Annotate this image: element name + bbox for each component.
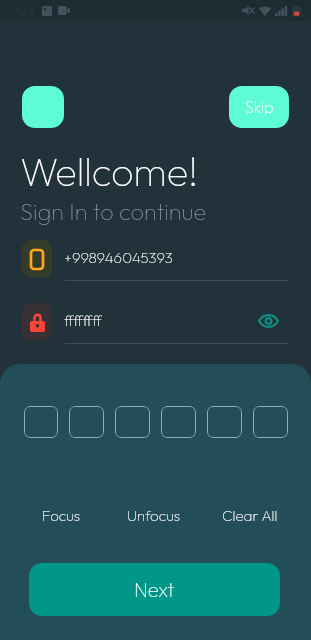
staticText: +998946045393 <box>64 248 173 267</box>
button[interactable]: Focus <box>11 499 111 531</box>
staticText: 7:23 <box>14 4 35 18</box>
button[interactable]: OTP digit <box>253 406 288 438</box>
staticText: Focus <box>42 506 81 525</box>
button[interactable]: OTP digit <box>115 406 150 438</box>
button[interactable]: Unfocus <box>104 499 204 531</box>
button[interactable]: Next <box>29 563 280 616</box>
button[interactable]: App logo <box>22 86 64 128</box>
staticText: Sign In to continue <box>20 196 207 226</box>
staticText: Wellcome! <box>20 146 199 196</box>
button[interactable]: OTP digit <box>207 406 242 438</box>
button[interactable]: OTP digit <box>161 406 196 438</box>
button[interactable]: Clear All <box>200 499 300 531</box>
staticText: ffffffff <box>64 311 102 330</box>
staticText: Clear All <box>222 506 278 525</box>
button[interactable]: OTP digit <box>24 406 58 438</box>
staticText: Unfocus <box>127 506 181 525</box>
button[interactable]: OTP digit <box>69 406 104 438</box>
button[interactable]: Show password <box>255 308 281 334</box>
staticText: Skip <box>245 97 274 117</box>
button[interactable]: Skip <box>229 86 289 128</box>
staticText: Next <box>134 577 175 602</box>
